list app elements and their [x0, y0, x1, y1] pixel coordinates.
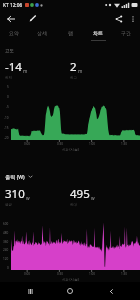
- staticText: 최대: [70, 203, 78, 208]
- staticText: 360: [3, 240, 9, 244]
- staticText: 시간 (시:분): [62, 277, 79, 282]
- staticText: 차트: [93, 30, 103, 36]
- staticText: 0:30: [57, 142, 64, 146]
- button[interactable]: 랩: [56, 26, 84, 40]
- button[interactable]: 출력 (W): [5, 173, 33, 180]
- button[interactable]: 차트: [84, 26, 112, 40]
- staticText: 1:30: [121, 142, 128, 146]
- staticText: -15: [4, 126, 9, 130]
- staticText: 5: [7, 85, 9, 89]
- button[interactable]: More options: [126, 12, 139, 25]
- staticText: 1:00: [89, 272, 96, 276]
- button[interactable]: 구간: [112, 26, 140, 40]
- button[interactable]: Back: [100, 282, 122, 300]
- staticText: 구간: [121, 30, 131, 36]
- staticText: 480: [3, 231, 9, 235]
- staticText: 0: [7, 266, 9, 270]
- staticText: -10: [4, 116, 9, 120]
- button[interactable]: 상세: [28, 26, 56, 40]
- staticText: m: [23, 68, 28, 74]
- staticText: -14: [5, 59, 22, 75]
- staticText: -5: [6, 105, 9, 109]
- button[interactable]: Recent apps: [19, 282, 41, 300]
- staticText: 240: [3, 248, 9, 252]
- staticText: 2: [70, 59, 77, 75]
- staticText: 0:30: [57, 272, 64, 276]
- staticText: 120: [3, 257, 9, 261]
- staticText: 1:30: [121, 272, 128, 276]
- staticText: KT 12:06: [3, 2, 23, 9]
- button[interactable]: 고도: [5, 48, 14, 54]
- staticText: 0:00: [24, 272, 31, 276]
- staticText: 최저: [5, 76, 13, 81]
- staticText: 시간 (시:분): [62, 147, 79, 152]
- staticText: -20: [4, 136, 9, 140]
- staticText: 0: [7, 95, 9, 99]
- button[interactable]: Share: [111, 11, 126, 26]
- staticText: 495: [70, 186, 90, 202]
- staticText: 고도: [5, 48, 14, 54]
- staticText: 0:00: [24, 142, 31, 146]
- staticText: 랩: [68, 30, 73, 36]
- staticText: 평균: [5, 203, 13, 208]
- button[interactable]: Back: [3, 11, 18, 26]
- staticText: 상세: [37, 30, 47, 36]
- staticText: 1:00: [89, 142, 96, 146]
- staticText: m: [78, 68, 83, 74]
- staticText: 310: [5, 186, 25, 202]
- button[interactable]: Edit: [26, 11, 40, 25]
- staticText: 출력 (W): [5, 173, 25, 180]
- staticText: w: [26, 195, 30, 201]
- button[interactable]: Home: [59, 282, 81, 300]
- staticText: w: [91, 195, 95, 201]
- staticText: 최고: [70, 76, 78, 81]
- button[interactable]: 요약: [0, 26, 28, 40]
- staticText: 600: [3, 222, 9, 226]
- staticText: 요약: [9, 30, 19, 36]
